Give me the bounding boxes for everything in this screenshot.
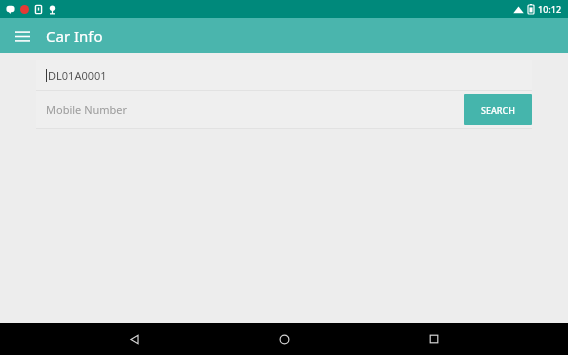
button[interactable]: DL01A0001 bbox=[36, 60, 532, 90]
staticText: Car Info bbox=[46, 26, 103, 46]
button[interactable]: Home bbox=[268, 323, 300, 355]
staticText: DL01A0001 bbox=[48, 68, 107, 83]
button[interactable]: Back bbox=[118, 323, 150, 355]
button[interactable]: Mobile Number bbox=[36, 91, 460, 128]
staticText: 10:12 bbox=[538, 3, 562, 15]
staticText: Mobile Number bbox=[46, 102, 128, 117]
button[interactable]: Open navigation drawer bbox=[8, 22, 36, 50]
button[interactable]: Recent apps bbox=[418, 323, 450, 355]
button[interactable]: SEARCH bbox=[464, 94, 532, 125]
staticText: SEARCH bbox=[481, 104, 515, 116]
